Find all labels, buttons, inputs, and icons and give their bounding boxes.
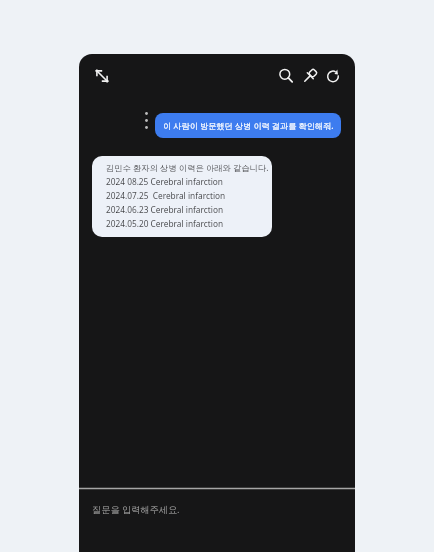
staticText: 김민수 환자의 상병 이력은 아래와 같습니다. 2024 08.25 Cere… bbox=[106, 162, 269, 229]
button[interactable]: 김민수 환자의 상병 이력은 아래와 같습니다. 2024 08.25 Cere… bbox=[92, 156, 272, 237]
staticText: 질문을 입력해주세요. bbox=[92, 503, 180, 516]
button[interactable] bbox=[298, 64, 322, 88]
staticText: 이 사람이 방문했던 상병 이력 결과를 확인해줘. bbox=[163, 120, 334, 131]
button[interactable] bbox=[274, 64, 298, 88]
button[interactable] bbox=[321, 64, 345, 88]
button[interactable]: 질문을 입력해주세요. bbox=[79, 489, 355, 529]
button[interactable] bbox=[90, 64, 114, 88]
button[interactable]: 이 사람이 방문했던 상병 이력 결과를 확인해줘. bbox=[155, 113, 341, 138]
